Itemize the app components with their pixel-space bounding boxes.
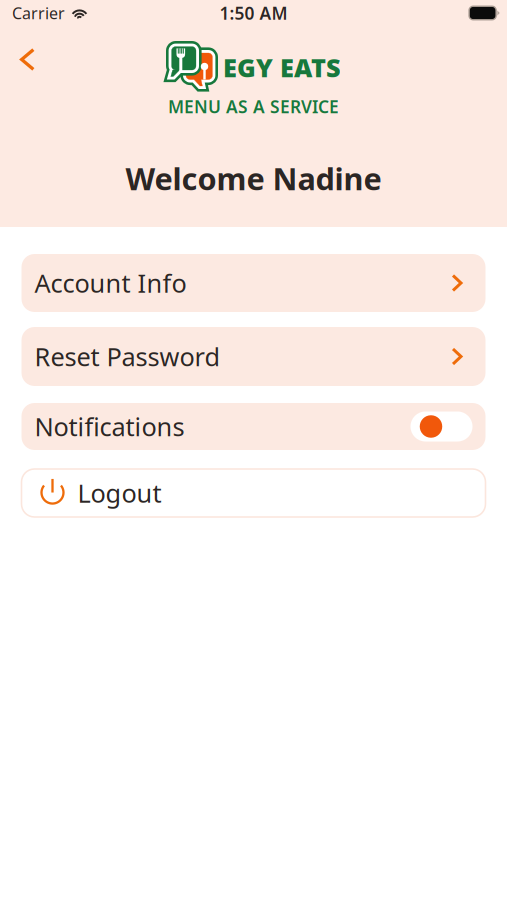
staticText: Welcome Nadine: [125, 158, 381, 199]
staticText: EGY EATS: [223, 51, 341, 84]
staticText: Logout: [77, 476, 161, 510]
button[interactable]: Notifications: [21, 403, 485, 450]
staticText: Carrier: [12, 2, 65, 24]
staticText: Reset Password: [34, 340, 220, 373]
staticText: 1:50 AM: [219, 1, 287, 24]
staticText: MENU AS A SERVICE: [168, 95, 339, 118]
button[interactable]: Reset Password: [21, 327, 485, 386]
button[interactable]: Logout: [21, 469, 485, 517]
staticText: Notifications: [34, 410, 184, 443]
staticText: Account Info: [34, 266, 186, 300]
button[interactable]: Back: [9, 37, 46, 82]
button[interactable]: Account Info: [21, 254, 485, 312]
